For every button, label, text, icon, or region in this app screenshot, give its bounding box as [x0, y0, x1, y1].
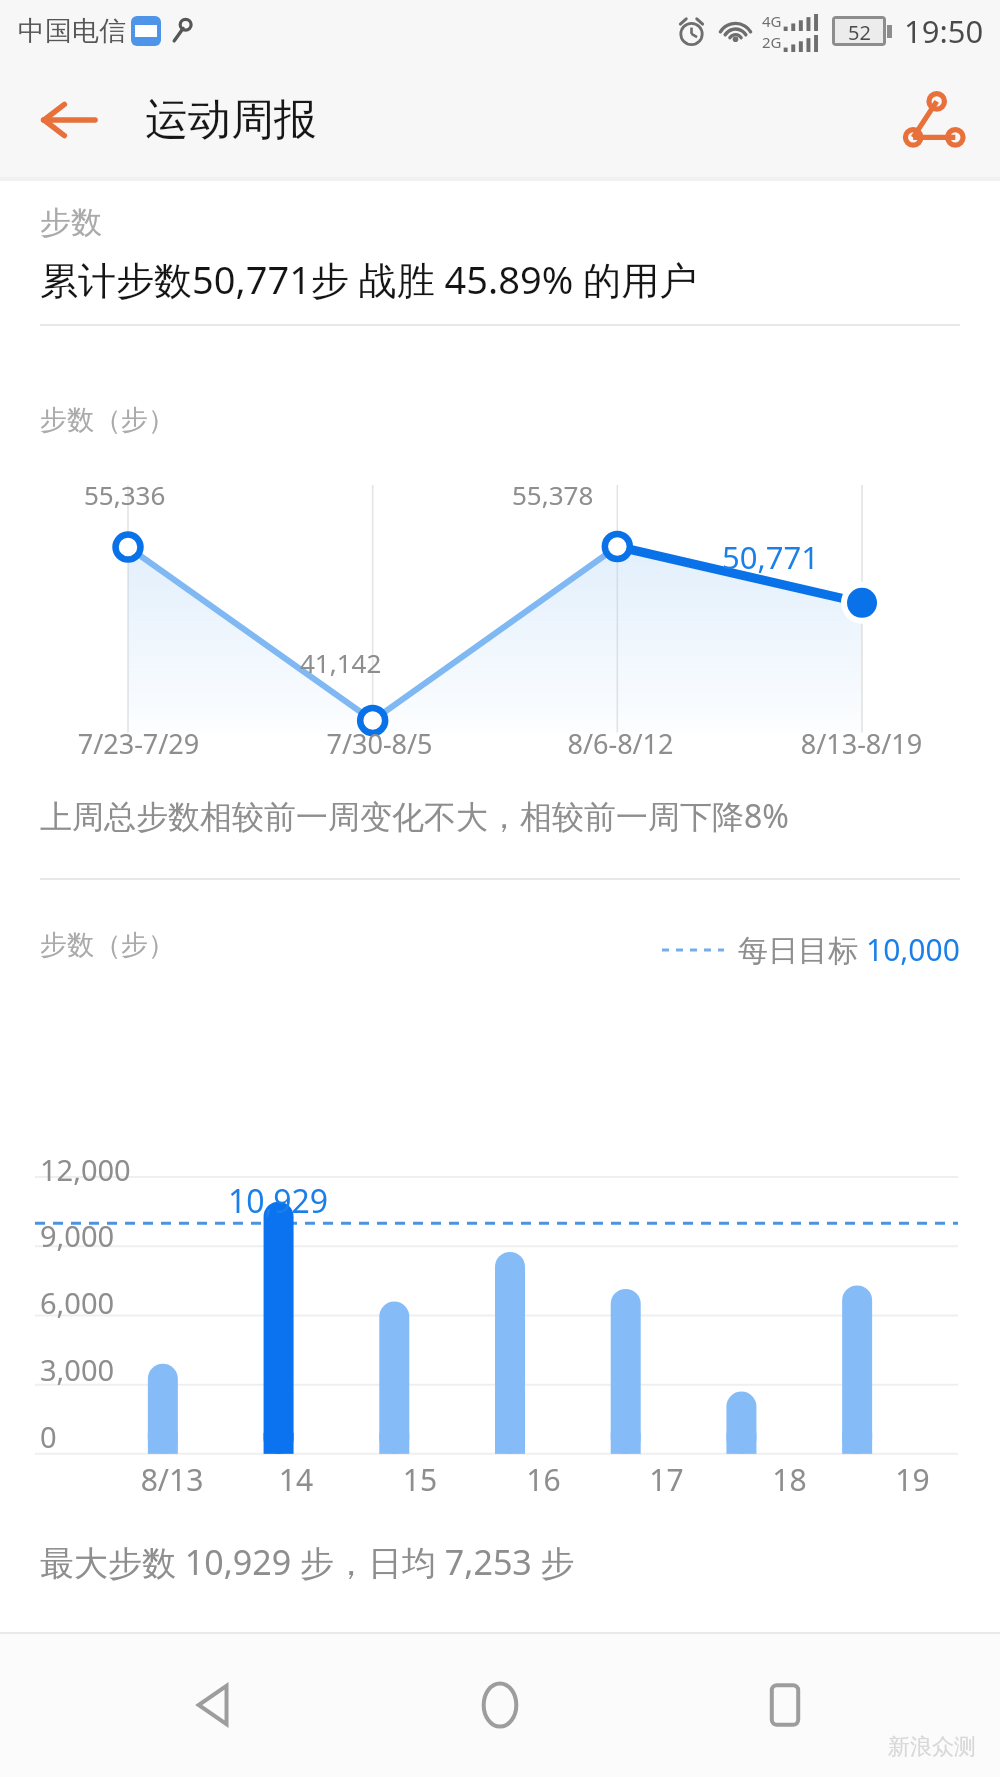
staticText: 上周总步数相较前一周变化不大，相较前一周下降8% [40, 794, 789, 838]
staticText: 50,771 [722, 536, 819, 578]
staticText: 中国电信 [18, 14, 126, 48]
staticText: 41,142 [300, 645, 382, 680]
staticText: 55,378 [512, 477, 594, 512]
staticText: 累计步数50,771步 战胜 45.89% 的用户 [40, 253, 698, 305]
staticText: 19 [851, 1459, 974, 1500]
staticText: 18 [728, 1459, 851, 1500]
staticText: 8/13 [110, 1459, 234, 1500]
staticText: 9,000 [40, 1216, 115, 1255]
button[interactable]: Home [445, 1650, 555, 1760]
staticText: 7/23-7/29 [18, 725, 259, 762]
button[interactable]: Back [26, 77, 112, 163]
staticText: 新浪众测 [888, 1733, 976, 1761]
staticText: 7/30-8/5 [259, 725, 500, 762]
button[interactable]: Share [888, 75, 978, 165]
staticText: 16 [482, 1459, 605, 1500]
staticText: 每日目标 [738, 929, 866, 970]
staticText: 14 [234, 1459, 358, 1500]
staticText: 10,929 [228, 1179, 329, 1223]
staticText: 15 [358, 1459, 482, 1500]
staticText: 12,000 [40, 1150, 131, 1189]
staticText: 0 [40, 1417, 57, 1456]
staticText: 17 [605, 1459, 728, 1500]
staticText: 步数（步） [40, 928, 175, 962]
staticText: 55,336 [84, 477, 166, 512]
staticText: 步数 [40, 203, 102, 242]
staticText: 2G [762, 32, 782, 52]
staticText: 8/13-8/19 [741, 725, 982, 762]
staticText: 4G [762, 11, 782, 31]
staticText: 19:50 [904, 10, 984, 52]
button[interactable]: Back [160, 1650, 270, 1760]
staticText: 6,000 [40, 1283, 115, 1322]
staticText: 最大步数 10,929 步，日均 7,253 步 [40, 1539, 575, 1585]
staticText: 3,000 [40, 1350, 115, 1389]
staticText: 10,000 [866, 929, 960, 970]
staticText: 52 [848, 19, 871, 43]
staticText: 运动周报 [145, 93, 317, 147]
staticText: 步数（步） [40, 403, 175, 437]
staticText: 8/6-8/12 [500, 725, 741, 762]
button[interactable]: Recents [730, 1650, 840, 1760]
